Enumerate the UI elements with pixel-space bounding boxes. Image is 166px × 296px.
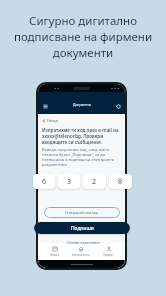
- button[interactable]: Генерирай нов код: [44, 207, 120, 218]
- staticText: 8: [118, 177, 123, 187]
- staticText: 2: [92, 177, 97, 187]
- button[interactable]: Профил: [102, 246, 115, 257]
- staticText: Документи: [73, 102, 91, 106]
- staticText: Профил: [103, 253, 114, 257]
- button[interactable]: Откажи подписване: [45, 238, 121, 246]
- button[interactable]: Уведомления: [71, 246, 91, 257]
- button[interactable]: Начало: [49, 246, 61, 257]
- button[interactable]: 6: [33, 174, 55, 189]
- staticText: Уведомления: [72, 253, 90, 257]
- button[interactable]: 3: [58, 174, 80, 189]
- staticText: Генерирай нов код: [65, 210, 99, 215]
- staticText: Начало: [50, 253, 60, 257]
- staticText: Назад: [47, 118, 58, 123]
- button[interactable]: 2: [83, 174, 106, 189]
- staticText: Изпратихме ти код през e-mail на xxxxx@t…: [42, 127, 119, 145]
- staticText: Подпиши: [71, 225, 94, 232]
- button[interactable]: Подпиши: [34, 222, 130, 234]
- button[interactable]: Menu: [41, 102, 49, 110]
- staticText: 6: [42, 177, 47, 187]
- staticText: Въведи получения код, след което натисни…: [42, 147, 115, 167]
- staticText: Откажи подписване: [67, 240, 100, 245]
- button[interactable]: 8: [109, 174, 132, 189]
- button[interactable]: Назад: [42, 118, 58, 123]
- staticText: Сигурно дигитално подписване на фирмени …: [0, 13, 166, 61]
- staticText: 3: [67, 177, 72, 187]
- button[interactable]: Settings: [114, 102, 122, 110]
